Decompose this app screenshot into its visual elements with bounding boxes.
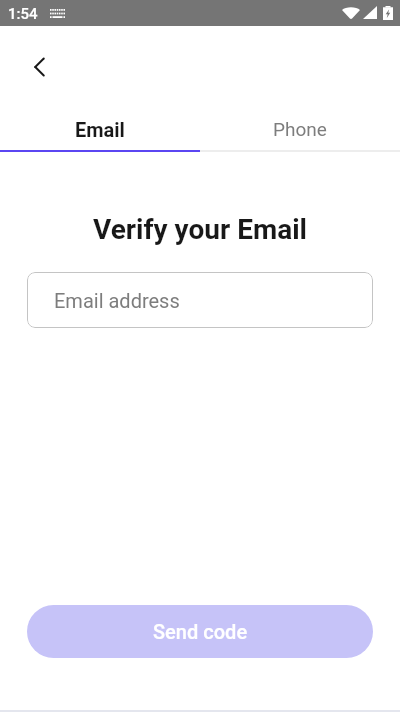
staticText: Verify your Email	[0, 213, 400, 246]
staticText: Email address	[54, 289, 180, 312]
button[interactable]: Phone	[200, 108, 400, 150]
staticText: Send code	[153, 620, 248, 643]
staticText: Email	[75, 118, 125, 141]
button[interactable]: Back	[20, 47, 60, 87]
button[interactable]: Email	[0, 108, 200, 150]
staticText: 1:54	[8, 5, 38, 23]
staticText: Phone	[273, 118, 327, 140]
button[interactable]: Send code	[27, 605, 373, 658]
button[interactable]: Email address	[27, 272, 373, 328]
